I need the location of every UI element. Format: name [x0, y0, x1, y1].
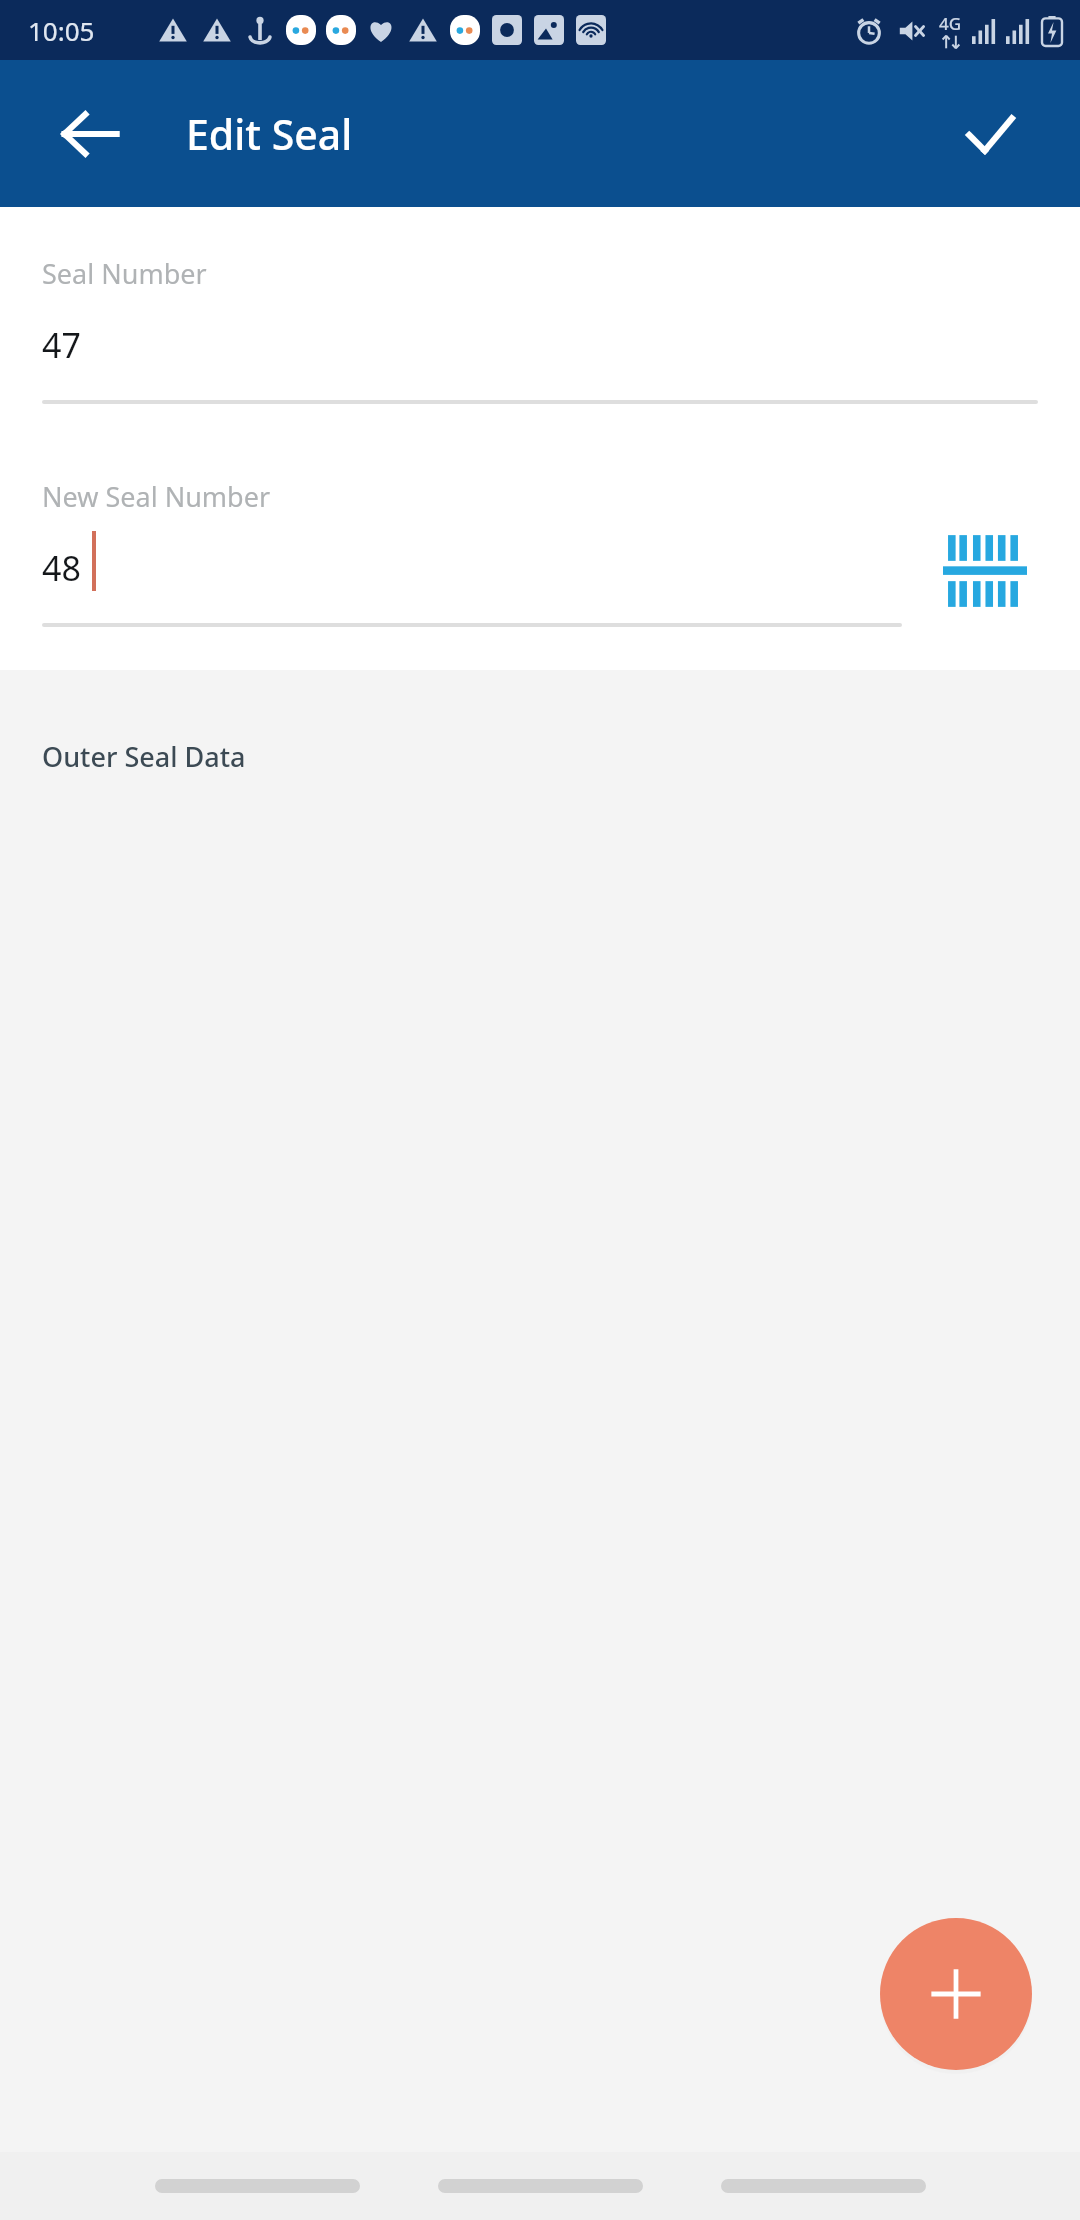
- button[interactable]: Back: [36, 80, 144, 188]
- staticText: 4G: [939, 12, 962, 35]
- staticText: Seal Number: [42, 255, 207, 292]
- button[interactable]: Save: [936, 80, 1044, 188]
- button[interactable]: Recents: [155, 2166, 360, 2206]
- staticText: New Seal Number: [42, 478, 271, 515]
- staticText: Edit Seal: [186, 106, 353, 162]
- button[interactable]: Back: [721, 2166, 926, 2206]
- button[interactable]: Add seal: [880, 1918, 1032, 2070]
- staticText: 47: [42, 322, 81, 368]
- staticText: 10:05: [28, 13, 95, 48]
- button[interactable]: Scan barcode: [930, 516, 1040, 626]
- button[interactable]: [0, 438, 1080, 670]
- staticText: Outer Seal Data: [42, 738, 246, 775]
- button[interactable]: Home: [438, 2166, 643, 2206]
- staticText: 48: [42, 545, 81, 591]
- button[interactable]: Seal Number: [0, 207, 1080, 438]
